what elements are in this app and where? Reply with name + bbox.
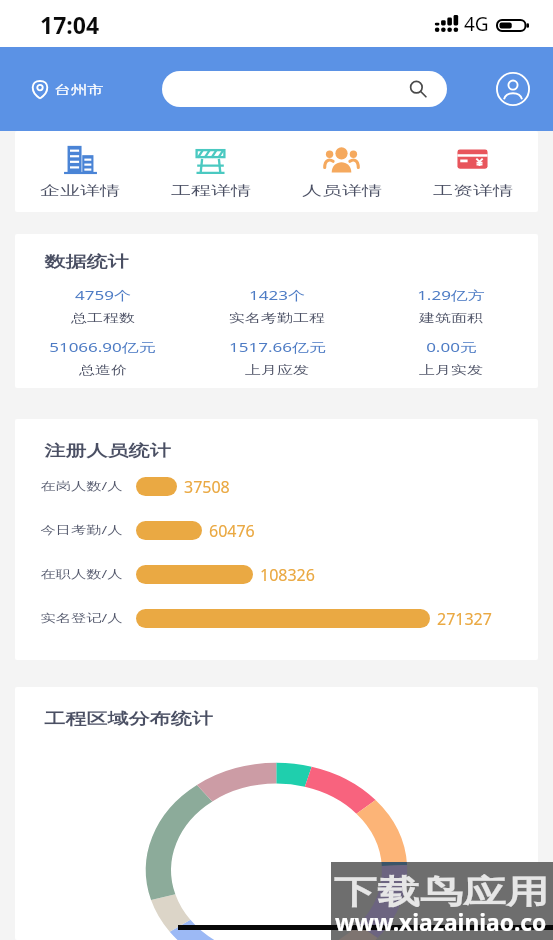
staticText: 总造价	[79, 363, 127, 377]
button[interactable]: 51066.90亿元	[15, 336, 190, 380]
staticText: 实名登记/人	[40, 611, 123, 625]
staticText: 4G	[464, 11, 489, 37]
button[interactable]: 在岗人数/人	[15, 476, 538, 496]
staticText: 建筑面积	[419, 311, 483, 325]
staticText: 上月实发	[419, 363, 483, 377]
staticText: 上月应发	[245, 363, 309, 377]
button[interactable]: 台州市	[31, 79, 104, 100]
button[interactable]: 工资详情	[407, 144, 538, 203]
button[interactable]: 在职人数/人	[15, 564, 538, 584]
staticText: 37508	[184, 476, 230, 496]
staticText: 1517.66亿元	[229, 339, 326, 356]
staticText: 工资详情	[433, 182, 513, 199]
button[interactable]: 今日考勤/人	[15, 520, 538, 540]
staticText: 在岗人数/人	[40, 479, 123, 493]
button[interactable]: 1423个	[190, 284, 364, 328]
staticText: 注册人员统计	[44, 441, 171, 461]
staticText: 人员详情	[302, 182, 382, 199]
staticText: 108326	[260, 564, 315, 584]
staticText: 在职人数/人	[40, 567, 123, 581]
button[interactable]: 0.00元	[364, 336, 538, 380]
staticText: 台州市	[54, 82, 104, 97]
button[interactable]: 1.29亿方	[364, 284, 538, 328]
staticText: 总工程数	[71, 311, 135, 325]
staticText: 企业详情	[40, 182, 120, 199]
button[interactable]: 1517.66亿元	[190, 336, 364, 380]
button[interactable]: 工程详情	[145, 144, 276, 203]
staticText: 1423个	[249, 287, 305, 304]
staticText: 数据统计	[44, 252, 129, 272]
button[interactable]: 企业详情	[15, 144, 145, 203]
staticText: 17:04	[40, 9, 100, 40]
staticText: 工程详情	[171, 182, 251, 199]
button[interactable]: Search	[162, 71, 447, 107]
staticText: 工程区域分布统计	[44, 709, 213, 729]
button[interactable]: 实名登记/人	[15, 608, 538, 628]
staticText: 实名考勤工程	[229, 311, 325, 325]
staticText: 60476	[209, 520, 255, 540]
staticText: 51066.90亿元	[49, 339, 156, 356]
staticText: 今日考勤/人	[40, 523, 123, 537]
staticText: 4759个	[75, 287, 131, 304]
button[interactable]: Account	[496, 72, 530, 106]
button[interactable]: 4759个	[15, 284, 190, 328]
staticText: 271327	[437, 608, 492, 628]
staticText: www.xiazainiao.com	[335, 907, 553, 940]
staticText: 下载鸟应用	[334, 871, 549, 912]
staticText: 1.29亿方	[417, 287, 485, 304]
button[interactable]: 人员详情	[276, 144, 407, 203]
staticText: 0.00元	[426, 339, 477, 356]
